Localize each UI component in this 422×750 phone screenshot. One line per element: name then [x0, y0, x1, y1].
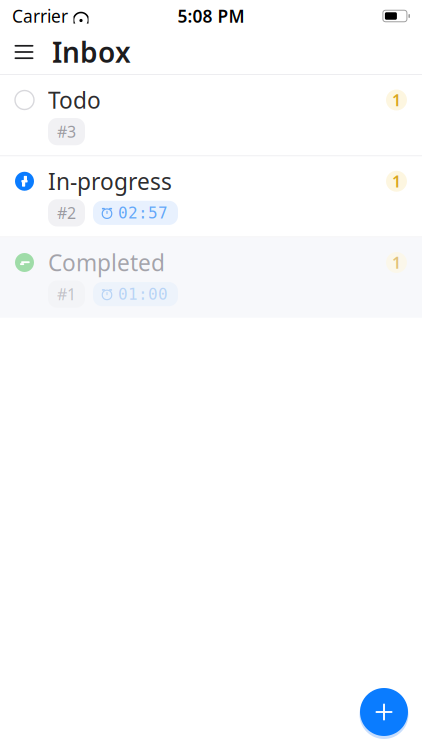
staticText: Todo: [48, 85, 101, 115]
staticText: Carrier: [12, 4, 68, 27]
staticText: #1: [57, 283, 76, 305]
button[interactable]: In-progress: [0, 156, 422, 237]
staticText: In-progress: [48, 166, 172, 196]
staticText: #3: [57, 121, 76, 142]
staticText: 1: [392, 252, 401, 273]
button[interactable]: Add task: [356, 684, 412, 740]
staticText: 1: [392, 171, 401, 192]
staticText: 02:57: [118, 204, 168, 222]
staticText: 5:08 PM: [177, 4, 244, 27]
staticText: #2: [57, 202, 76, 223]
button[interactable]: Completed: [0, 237, 422, 318]
staticText: 1: [392, 89, 401, 111]
staticText: Completed: [48, 247, 165, 277]
button[interactable]: Todo: [0, 75, 422, 156]
button[interactable]: Menu: [4, 30, 44, 74]
staticText: 01:00: [118, 285, 168, 303]
staticText: Inbox: [52, 33, 131, 71]
